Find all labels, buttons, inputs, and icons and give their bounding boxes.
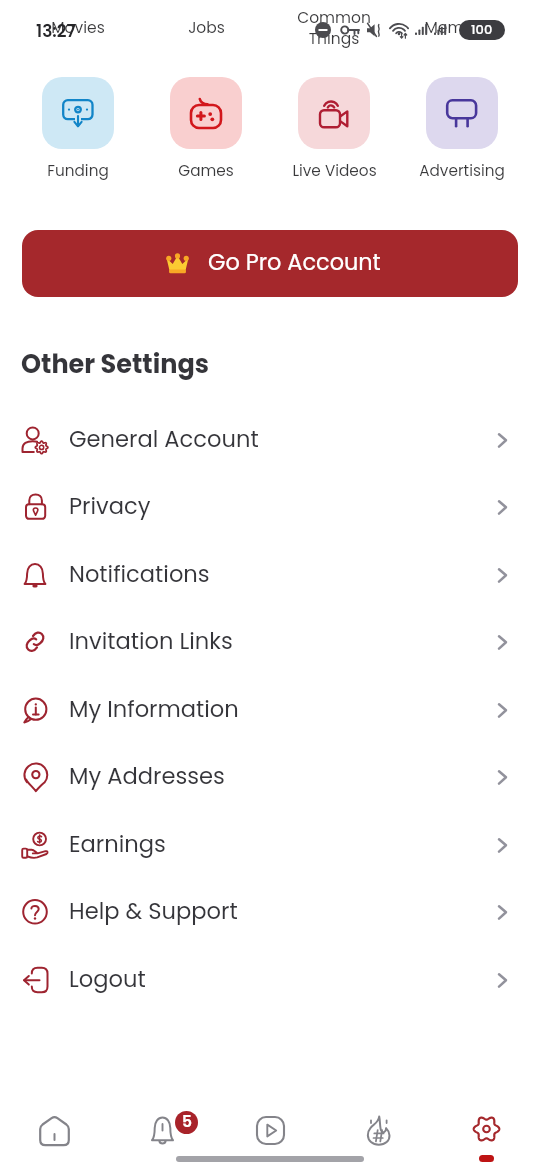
staticText: Live Videos [292,160,377,181]
staticText: General Account [69,423,494,455]
button[interactable]: Notifications [108,1095,216,1170]
staticText: 13:27 [36,19,76,43]
button[interactable]: My Information [0,676,540,743]
staticText: Logout [69,963,494,995]
staticText: 100 [471,20,493,38]
button[interactable]: Help & Support [0,878,540,946]
button[interactable]: Advertising [398,77,526,181]
button[interactable]: Trending [324,1095,432,1170]
staticText: Memories [424,17,501,39]
button[interactable]: Funding [14,77,142,181]
staticText: Earnings [69,828,494,860]
staticText: Common Things [297,7,371,49]
button[interactable]: Movies [14,0,142,56]
button[interactable]: Privacy [0,473,540,541]
staticText: 5 [182,1111,192,1133]
button[interactable]: My Addresses [0,743,540,811]
button[interactable]: Earnings [0,811,540,878]
staticText: Movies [51,17,105,39]
button[interactable]: Videos [216,1095,324,1170]
staticText: My Information [69,693,494,725]
staticText: Jobs [188,17,225,39]
button[interactable]: Invitation Links [0,608,540,676]
button[interactable]: Go Pro Account [22,230,518,297]
staticText: Funding [47,160,109,181]
staticText: My Addresses [69,760,494,792]
staticText: Advertising [419,160,505,181]
staticText: Privacy [69,490,494,522]
button[interactable]: Home [0,1095,108,1170]
button[interactable]: Notifications [0,541,540,608]
staticText: Other Settings [21,346,209,382]
staticText: Help & Support [69,895,494,927]
button[interactable]: Memories [398,0,526,56]
button[interactable]: Games [142,77,270,181]
staticText: Invitation Links [69,625,494,657]
staticText: Notifications [69,558,494,590]
staticText: Games [178,160,234,181]
button[interactable]: Live Videos [270,77,398,181]
staticText: Go Pro Account [208,246,381,277]
button[interactable]: Jobs [142,0,270,56]
button[interactable]: Common Things [270,0,398,56]
button[interactable]: Logout [0,946,540,1014]
button[interactable]: General Account [0,406,540,473]
button[interactable]: Settings [432,1095,540,1170]
